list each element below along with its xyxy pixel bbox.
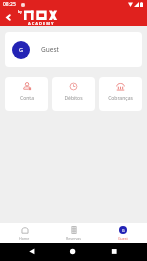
staticText: Guest	[118, 236, 128, 241]
staticText: ACADEMY	[28, 21, 55, 26]
button[interactable]: Conta	[5, 77, 48, 111]
staticText: Cobranças	[108, 95, 133, 102]
staticText: by	[18, 10, 22, 14]
staticText: 08:25	[3, 1, 16, 8]
staticText: Débitos	[64, 95, 83, 102]
staticText: Guest	[41, 45, 59, 54]
button[interactable]: Débitos	[52, 77, 95, 111]
staticText: Reservas	[66, 236, 82, 241]
staticText: Home	[19, 236, 30, 241]
button[interactable]: Home	[0, 223, 49, 243]
staticText: G	[122, 228, 125, 233]
button[interactable]: G	[5, 32, 142, 67]
staticText: Conta	[20, 95, 34, 102]
button[interactable]: G	[98, 223, 147, 243]
staticText: G	[19, 46, 24, 54]
button[interactable]: Reservas	[49, 223, 98, 243]
button[interactable]: Cobranças	[99, 77, 142, 111]
button[interactable]: Back	[0, 9, 17, 26]
